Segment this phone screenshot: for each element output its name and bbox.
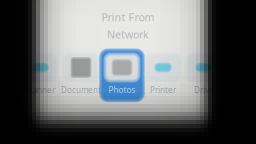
staticText: Printer	[150, 84, 176, 95]
staticText: Document	[61, 84, 101, 95]
button[interactable]: Drive	[184, 51, 224, 99]
staticText: Photos	[108, 84, 135, 95]
staticText: Scanner	[25, 84, 55, 95]
button[interactable]: Scanner	[20, 51, 60, 99]
button[interactable]: Document	[61, 51, 101, 99]
button[interactable]: Photos	[102, 51, 142, 99]
staticText: Drive	[194, 84, 214, 95]
button[interactable]: Printer	[143, 51, 183, 99]
staticText: Network	[107, 27, 149, 41]
staticText: Print From	[101, 10, 154, 24]
